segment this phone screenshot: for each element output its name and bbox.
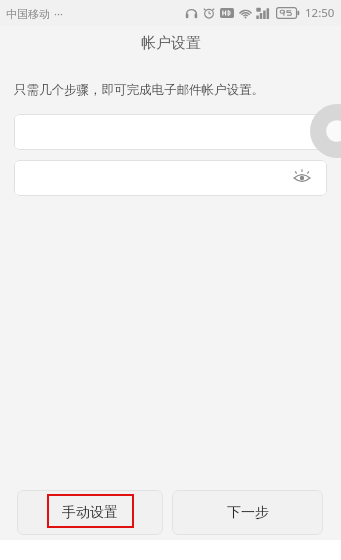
button[interactable]: 手动设置 — [17, 490, 163, 535]
staticText: 中国移动 — [6, 7, 50, 21]
button[interactable]: Show password — [14, 160, 327, 196]
button[interactable]: Show password — [289, 165, 315, 191]
staticText: 手动设置 — [62, 504, 118, 522]
button[interactable] — [14, 114, 327, 150]
staticText: 只需几个步骤，即可完成电子邮件帐户设置。 — [14, 82, 264, 98]
staticText: ··· — [54, 6, 63, 21]
button[interactable]: 下一步 — [172, 490, 323, 535]
button[interactable]: Assistive touch — [310, 104, 341, 158]
staticText: 下一步 — [227, 504, 269, 522]
staticText: 帐户设置 — [141, 34, 201, 53]
staticText: 12:50 — [305, 5, 335, 21]
